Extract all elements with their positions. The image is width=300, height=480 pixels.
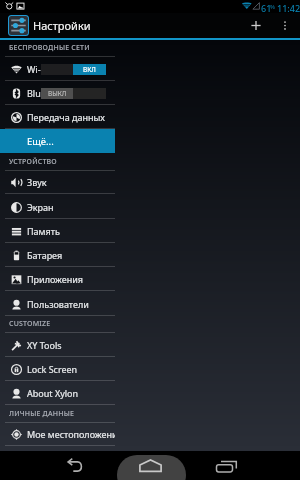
staticText: УСТРОЙСТВО: [9, 157, 57, 167]
staticText: БЕСПРОВОДНЫЕ СЕТИ: [9, 43, 90, 53]
button[interactable]: XY Tools: [0, 333, 115, 357]
button[interactable]: Батарея: [0, 243, 115, 267]
button[interactable]: Lock Screen: [0, 357, 115, 381]
staticText: Lock Screen: [27, 363, 78, 375]
staticText: %: [270, 3, 275, 11]
button[interactable]: Bluetooth: [0, 81, 115, 105]
staticText: XY Tools: [27, 339, 62, 351]
staticText: Экран: [27, 201, 54, 213]
button[interactable]: Add: [243, 13, 269, 38]
button[interactable]: Мое местоположение: [0, 422, 115, 446]
staticText: Настройки: [33, 18, 91, 33]
button[interactable]: More options: [274, 13, 296, 38]
button[interactable]: Recents: [200, 451, 300, 480]
button[interactable]: Home: [100, 451, 200, 480]
staticText: CUSTOMIZE: [9, 319, 51, 329]
staticText: Мое местоположение: [27, 428, 115, 440]
staticText: Ещё...: [27, 135, 54, 148]
staticText: Пользователи: [27, 298, 89, 310]
staticText: ВКЛ: [83, 65, 96, 74]
staticText: Звук: [27, 176, 47, 188]
staticText: Bluetooth: [27, 87, 69, 99]
staticText: Передача данных: [27, 111, 105, 123]
staticText: About Xylon: [27, 387, 79, 399]
staticText: ЛИЧНЫЕ ДАННЫЕ: [9, 409, 75, 419]
button[interactable]: Экран: [0, 195, 115, 219]
button[interactable]: Wi-Fi: [0, 57, 115, 81]
button[interactable]: About Xylon: [0, 381, 115, 405]
staticText: Батарея: [27, 249, 63, 261]
staticText: 61: [261, 2, 272, 14]
button[interactable]: Back: [0, 451, 100, 480]
button[interactable]: Пользователи: [0, 292, 115, 316]
staticText: Приложения: [27, 273, 84, 285]
button[interactable]: Звук: [0, 170, 115, 194]
button[interactable]: Память: [0, 219, 115, 243]
button[interactable]: Ещё...: [0, 129, 115, 153]
button[interactable]: Передача данных: [0, 105, 115, 129]
staticText: ВЫКЛ: [48, 89, 67, 98]
staticText: 11:42: [277, 2, 300, 14]
staticText: Wi-Fi: [27, 63, 48, 75]
button[interactable]: Приложения: [0, 267, 115, 291]
staticText: Память: [27, 225, 60, 237]
